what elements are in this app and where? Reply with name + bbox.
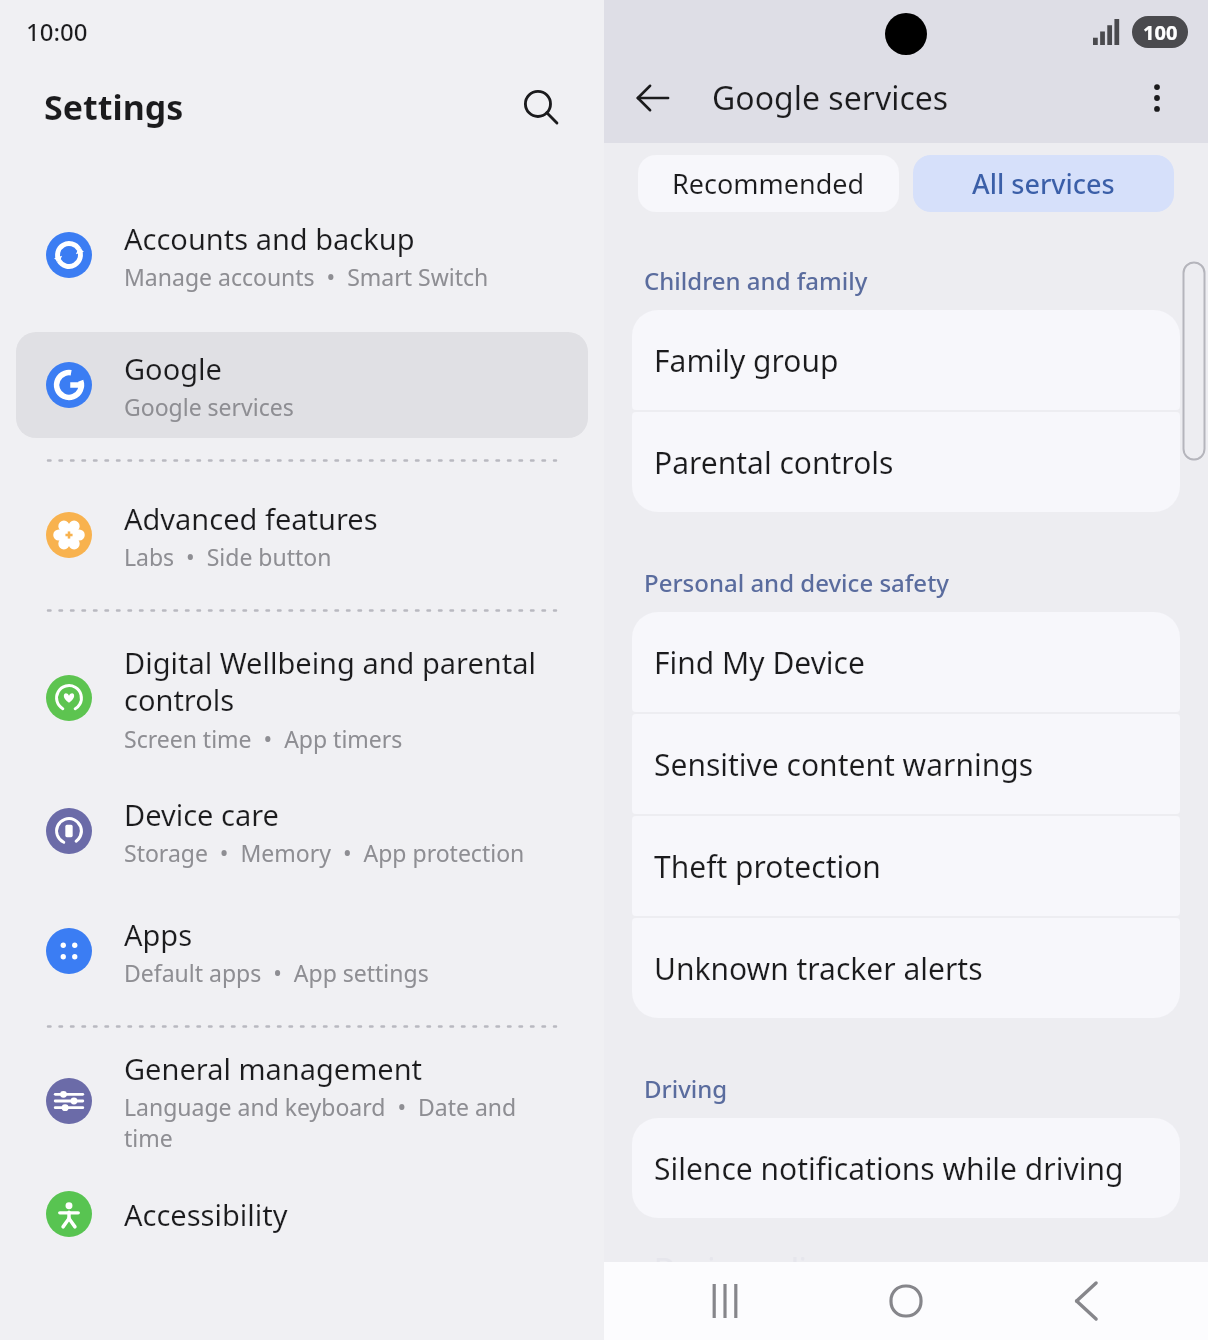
button[interactable]: More options	[1132, 73, 1182, 123]
staticText: Unknown tracker alerts	[654, 948, 983, 989]
staticText: Screen time • App timers	[124, 723, 403, 754]
staticText: General management	[124, 1049, 423, 1088]
staticText: Digital Wellbeing and parental controls	[124, 643, 536, 720]
staticText: Children and family	[644, 264, 868, 297]
staticText: Google	[124, 349, 222, 388]
button[interactable]: Parental controls	[632, 412, 1180, 512]
staticText: Language and keyboard • Date and time	[124, 1091, 568, 1153]
button[interactable]: Google	[16, 332, 588, 438]
button[interactable]: Sensitive content warnings	[632, 714, 1180, 814]
button[interactable]: Silence notifications while driving	[632, 1118, 1180, 1218]
staticText: 10:00	[26, 15, 88, 48]
staticText: Settings	[44, 84, 184, 130]
staticText: Device care	[124, 795, 279, 834]
staticText: Storage • Memory • App protection	[124, 837, 525, 868]
button[interactable]: Theft protection	[632, 816, 1180, 916]
staticText: Recommended	[672, 165, 865, 202]
button[interactable]: Search	[514, 80, 568, 134]
button[interactable]: All services	[913, 155, 1174, 212]
staticText: Find My Device	[654, 642, 865, 683]
button[interactable]: Find My Device	[632, 612, 1180, 712]
staticText: Google services	[712, 76, 949, 120]
staticText: Driving	[644, 1072, 728, 1105]
button[interactable]: Digital Wellbeing and parental controls	[16, 632, 588, 764]
button[interactable]: Home	[846, 1262, 966, 1340]
staticText: Personal and device safety	[644, 566, 949, 599]
button[interactable]: Advanced features	[16, 482, 588, 588]
staticText: 100	[1143, 19, 1178, 46]
staticText: Silence notifications while driving	[654, 1148, 1124, 1189]
staticText: Accessibility	[124, 1195, 288, 1234]
button[interactable]: Device care	[16, 778, 588, 884]
staticText: Default apps • App settings	[124, 957, 429, 988]
staticText: Google services	[124, 391, 294, 422]
button[interactable]: General management	[16, 1048, 588, 1154]
staticText: Accounts and backup	[124, 219, 415, 258]
staticText: Sensitive content warnings	[654, 744, 1034, 785]
button[interactable]: Accessibility	[16, 1168, 588, 1260]
button[interactable]: Recommended	[638, 155, 899, 212]
staticText: Labs • Side button	[124, 541, 332, 572]
button[interactable]: Unknown tracker alerts	[632, 918, 1180, 1018]
button[interactable]: Accounts and backup	[16, 202, 588, 308]
staticText: All services	[972, 165, 1115, 202]
button[interactable]: Apps	[16, 898, 588, 1004]
staticText: Apps	[124, 915, 193, 954]
staticText: Parental controls	[654, 442, 894, 483]
staticText: Advanced features	[124, 499, 378, 538]
staticText: Theft protection	[654, 846, 881, 887]
staticText: Manage accounts • Smart Switch	[124, 261, 489, 292]
button[interactable]: Back	[626, 71, 680, 125]
button[interactable]: Family group	[632, 310, 1180, 410]
button[interactable]: Recents	[665, 1262, 785, 1340]
staticText: Family group	[654, 340, 839, 381]
button[interactable]: Back	[1027, 1262, 1147, 1340]
